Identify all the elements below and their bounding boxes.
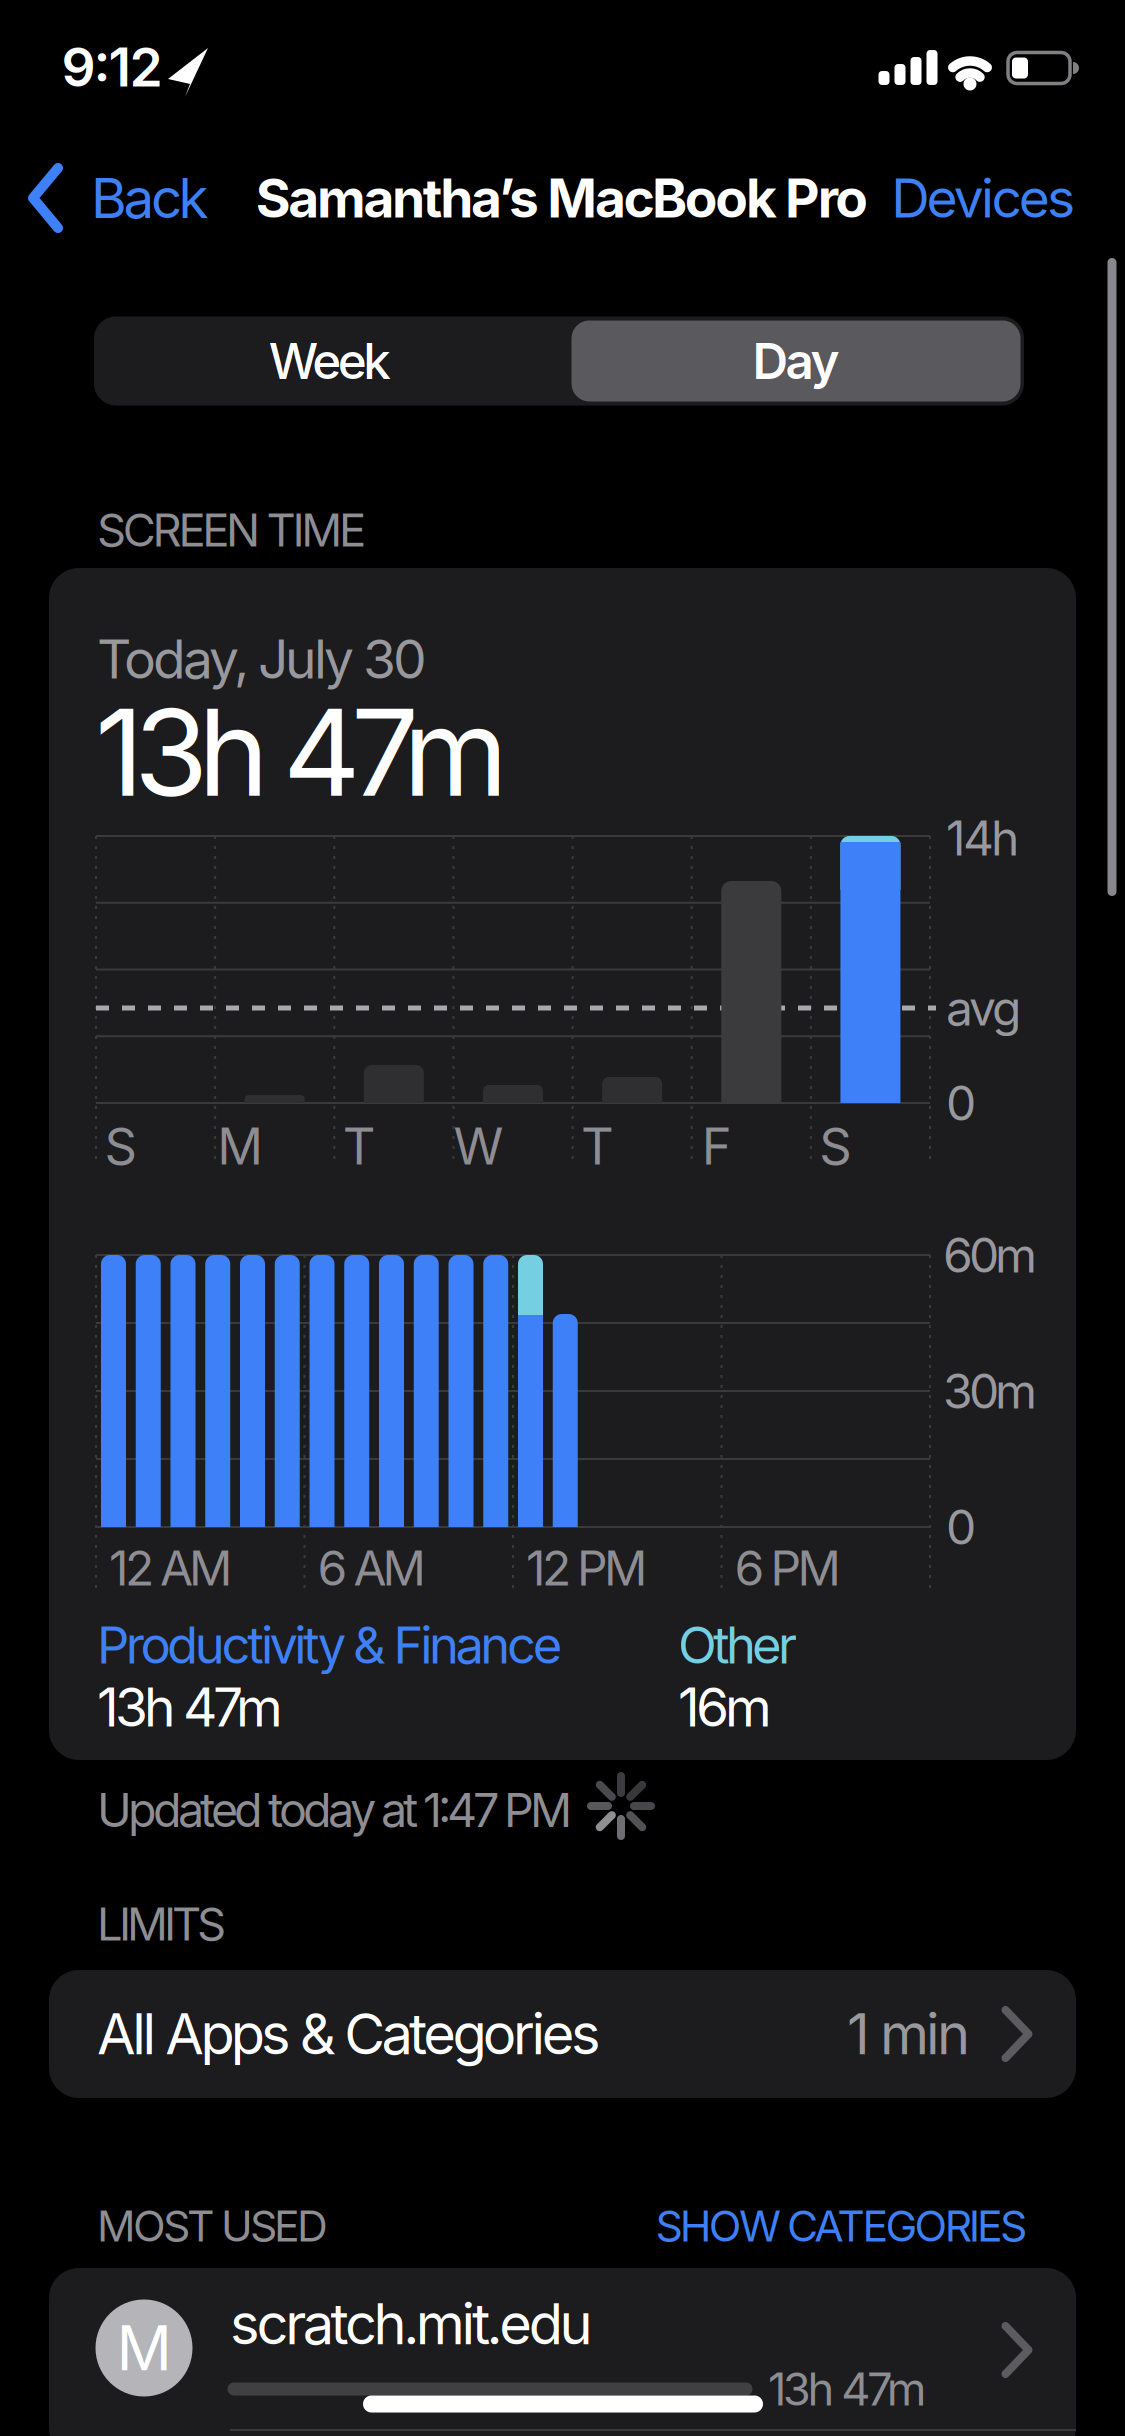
- staticText: Week: [269, 331, 391, 391]
- button[interactable]: All Apps & Categories: [49, 1970, 1076, 2098]
- staticText: M: [217, 1115, 263, 1177]
- staticText: 6 PM: [734, 1539, 840, 1597]
- staticText: Samantha’s MacBook Pro: [256, 166, 868, 230]
- staticText: 13h 47m: [97, 1675, 283, 1739]
- staticText: All Apps & Categories: [97, 2000, 601, 2068]
- staticText: T: [581, 1115, 614, 1177]
- button[interactable]: SHOW CATEGORIES: [527, 2200, 1027, 2252]
- staticText: 30m: [943, 1362, 1037, 1420]
- staticText: SCREEN TIME: [97, 503, 366, 557]
- staticText: Day: [752, 331, 839, 391]
- button[interactable]: Day: [571, 320, 1020, 401]
- staticText: 60m: [943, 1226, 1037, 1284]
- staticText: 0: [946, 1498, 976, 1556]
- staticText: 14h: [946, 809, 1019, 867]
- staticText: S: [819, 1115, 852, 1177]
- button[interactable]: Devices: [855, 153, 1075, 243]
- staticText: Updated today at 1:47 PM: [97, 1782, 572, 1838]
- staticText: avg: [946, 979, 1021, 1037]
- staticText: Productivity & Finance: [97, 1614, 563, 1676]
- staticText: 13h 47m: [768, 2362, 927, 2416]
- button[interactable]: Week: [110, 318, 550, 403]
- staticText: MOST USED: [97, 2200, 328, 2252]
- staticText: W: [453, 1115, 503, 1177]
- staticText: F: [702, 1115, 732, 1177]
- staticText: Devices: [891, 166, 1075, 230]
- staticText: Other: [678, 1614, 797, 1676]
- staticText: T: [343, 1115, 376, 1177]
- staticText: SHOW CATEGORIES: [656, 2200, 1027, 2252]
- staticText: 13h 47m: [95, 679, 508, 825]
- staticText: 1 min: [847, 2000, 970, 2068]
- staticText: 12 PM: [526, 1539, 647, 1597]
- staticText: scratch.mit.edu: [230, 2290, 592, 2358]
- staticText: 16m: [678, 1675, 772, 1739]
- button[interactable]: Back: [25, 153, 255, 243]
- staticText: S: [104, 1115, 137, 1177]
- staticText: 0: [946, 1074, 976, 1132]
- staticText: 12 AM: [109, 1539, 232, 1597]
- staticText: Back: [91, 165, 208, 231]
- staticText: 9:12: [61, 35, 162, 99]
- button[interactable]: M: [49, 2268, 1076, 2436]
- staticText: Today, July 30: [97, 627, 427, 691]
- staticText: LIMITS: [97, 1897, 226, 1951]
- staticText: 6 AM: [317, 1539, 425, 1597]
- staticText: M: [116, 2311, 171, 2385]
